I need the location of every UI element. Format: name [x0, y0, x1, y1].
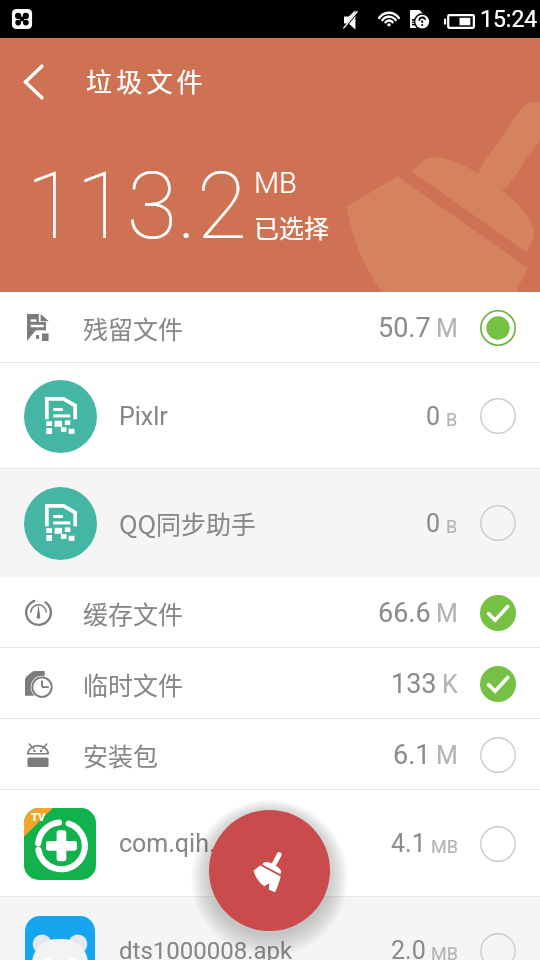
staticText: 4.1	[391, 829, 426, 858]
staticText: 133	[391, 668, 437, 700]
staticText: MB	[431, 943, 458, 960]
staticText: M	[436, 741, 458, 770]
staticText: 临时文件	[83, 666, 184, 702]
staticText: com.qih.	[119, 829, 216, 858]
staticText: 6.1	[393, 739, 431, 771]
button[interactable]: 缓存文件	[0, 577, 540, 648]
staticText: QQ同步助手	[119, 505, 257, 541]
button[interactable]: TV	[0, 790, 540, 897]
button[interactable]: Select	[474, 392, 522, 440]
button[interactable]: Select	[474, 304, 522, 352]
staticText: dts1000008.apk	[119, 937, 293, 960]
button[interactable]: Select	[474, 927, 522, 960]
staticText: MB	[431, 836, 458, 857]
button[interactable]: 残留文件	[0, 292, 540, 363]
staticText: Pixlr	[119, 402, 168, 431]
button[interactable]: Select	[474, 731, 522, 779]
button[interactable]: Select	[474, 660, 522, 708]
staticText: M	[436, 314, 458, 343]
staticText: K	[442, 670, 458, 699]
button[interactable]: Select	[474, 589, 522, 637]
button[interactable]: Back	[2, 50, 66, 114]
staticText: 已选择	[254, 209, 330, 245]
staticText: 安装包	[83, 737, 159, 773]
staticText: 0	[426, 509, 441, 538]
staticText: TV	[31, 811, 46, 824]
button[interactable]: Select	[474, 499, 522, 547]
staticText: 113.2	[26, 153, 248, 261]
staticText: B	[446, 409, 458, 430]
button[interactable]: Select	[474, 820, 522, 868]
button[interactable]: 安装包	[0, 719, 540, 790]
staticText: MB	[254, 166, 297, 200]
button[interactable]: 临时文件	[0, 648, 540, 719]
staticText: 垃圾文件	[86, 62, 207, 100]
staticText: 2.0	[391, 936, 426, 960]
button[interactable]: Clean	[209, 810, 330, 931]
staticText: M	[436, 599, 458, 628]
staticText: 50.7	[378, 312, 431, 344]
staticText: 缓存文件	[83, 595, 184, 631]
staticText: 15:24	[480, 6, 538, 33]
staticText: 66.6	[378, 597, 431, 629]
staticText: B	[446, 516, 458, 537]
button[interactable]: Pixlr	[0, 363, 540, 469]
button[interactable]: QQ同步助手	[0, 469, 540, 577]
staticText: 0	[426, 402, 441, 431]
staticText: 残留文件	[83, 310, 184, 346]
button[interactable]: dts1000008.apk	[0, 897, 540, 960]
